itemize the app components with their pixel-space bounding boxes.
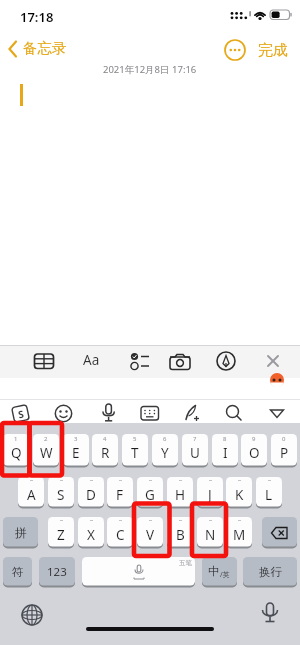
staticText: 五笔 (179, 559, 192, 567)
button[interactable]: 5 (122, 434, 148, 467)
button[interactable] (140, 405, 160, 422)
staticText: 8 (223, 435, 227, 443)
button[interactable]: K (226, 477, 252, 508)
button[interactable]: 符 (3, 557, 32, 587)
button[interactable] (182, 403, 202, 424)
button[interactable]: C (107, 517, 133, 548)
staticText: O (249, 444, 260, 462)
button[interactable]: 2 (33, 434, 59, 467)
staticText: 5 (133, 435, 137, 443)
button[interactable]: L (256, 477, 282, 508)
button[interactable]: Z (48, 517, 74, 548)
button[interactable] (224, 39, 246, 61)
button[interactable]: 4 (92, 434, 118, 467)
staticText: 9 (252, 435, 256, 443)
button[interactable]: J (197, 477, 223, 508)
staticText: B (176, 526, 185, 544)
button[interactable]: 完成 (258, 41, 294, 61)
staticText: /英 (220, 570, 230, 580)
staticText: T (131, 444, 139, 462)
staticText: 6 (163, 435, 167, 443)
button[interactable]: 8 (212, 434, 238, 467)
button[interactable]: S (12, 405, 29, 422)
button[interactable]: B (167, 517, 193, 548)
staticText: D (86, 486, 96, 504)
button[interactable] (53, 403, 74, 424)
button[interactable] (32, 349, 56, 373)
button[interactable]: D (78, 477, 104, 508)
staticText: F (116, 486, 124, 504)
button[interactable]: 6 (152, 434, 178, 467)
staticText: G (145, 486, 155, 504)
staticText: 换行 (259, 565, 282, 579)
staticText: 4 (103, 435, 107, 443)
staticText: X (87, 526, 95, 544)
button[interactable] (168, 349, 192, 373)
staticText: 中 (208, 564, 220, 578)
staticText: W (40, 444, 53, 462)
button[interactable]: 9 (241, 434, 267, 467)
staticText: 完成 (258, 41, 288, 60)
staticText: Q (11, 444, 22, 462)
staticText: U (190, 444, 200, 462)
staticText: Aa (83, 351, 100, 369)
staticText: J (208, 486, 212, 504)
button[interactable] (262, 517, 297, 548)
button[interactable] (128, 349, 152, 373)
button[interactable] (268, 406, 286, 421)
button[interactable] (98, 402, 119, 425)
staticText: P (280, 444, 289, 462)
button[interactable]: 拼 (3, 517, 38, 548)
button[interactable]: 7 (182, 434, 208, 467)
button[interactable]: 0 (271, 434, 297, 467)
staticText: I (223, 444, 228, 462)
staticText: K (235, 486, 244, 504)
button[interactable]: 备忘录 (4, 38, 74, 60)
button[interactable]: F (107, 477, 133, 508)
button[interactable] (261, 349, 285, 373)
button[interactable]: H (167, 477, 193, 508)
button[interactable] (252, 601, 288, 637)
button[interactable]: Aa (79, 348, 103, 372)
button[interactable] (14, 603, 50, 639)
staticText: A (27, 486, 36, 504)
staticText: 1 (14, 435, 18, 443)
staticText: M (233, 526, 246, 544)
button[interactable]: N (197, 517, 223, 548)
staticText: L (265, 486, 273, 504)
staticText: 123 (47, 564, 67, 580)
button[interactable]: A (18, 477, 44, 508)
staticText: C (116, 526, 125, 544)
staticText: Y (161, 444, 169, 462)
staticText: 备忘录 (23, 39, 67, 57)
staticText: E (72, 444, 80, 462)
button[interactable] (214, 349, 238, 373)
button[interactable]: 五笔 (82, 557, 195, 587)
button[interactable] (224, 403, 244, 424)
button[interactable]: 换行 (243, 557, 297, 587)
button[interactable]: M (226, 517, 252, 548)
button[interactable]: S (48, 477, 74, 508)
button[interactable]: X (78, 517, 104, 548)
button[interactable]: V (137, 517, 163, 548)
button[interactable]: 1 (3, 434, 29, 467)
button[interactable]: G (137, 477, 163, 508)
staticText: S (57, 486, 65, 504)
staticText: Z (57, 526, 65, 544)
staticText: 拼 (15, 525, 27, 540)
staticText: 2021年12月8日 17:16 (103, 63, 197, 76)
staticText: 3 (74, 435, 78, 443)
button[interactable]: 123 (39, 557, 75, 587)
staticText: 7 (193, 435, 197, 443)
staticText: R (101, 444, 110, 462)
staticText: 2 (44, 435, 48, 443)
staticText: 符 (12, 565, 24, 579)
button[interactable]: 中 (202, 557, 237, 587)
staticText: 0 (282, 435, 286, 443)
button[interactable]: 3 (63, 434, 89, 467)
staticText: S (17, 406, 25, 421)
staticText: H (175, 486, 186, 504)
staticText: V (146, 526, 155, 544)
staticText: N (205, 526, 216, 544)
staticText: 17:18 (20, 8, 54, 26)
